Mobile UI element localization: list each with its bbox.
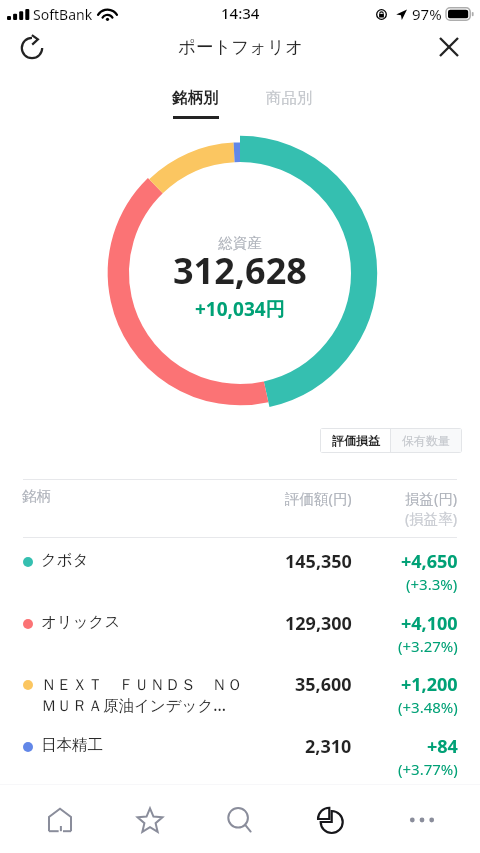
staticText: (+3.27%) — [398, 636, 458, 656]
button[interactable]: Search — [210, 790, 270, 850]
button[interactable]: ＮＥＸＴ ＦＵＮＤＳ ＮＯ — [0, 661, 480, 723]
button[interactable]: クボタ — [0, 538, 480, 600]
staticText: (+3.3%) — [406, 574, 458, 594]
staticText: +4,100 — [401, 611, 458, 636]
button[interactable]: More — [390, 790, 450, 850]
staticText: +1,200 — [401, 672, 458, 697]
staticText: ＭＵＲＡ原油インデック... — [41, 694, 226, 715]
staticText: 2,310 — [305, 734, 352, 759]
button[interactable]: 銘柄別 — [162, 88, 229, 124]
staticText: クボタ — [41, 550, 89, 570]
staticText: ＮＥＸＴ ＦＵＮＤＳ ＮＯ — [41, 673, 243, 694]
staticText: SoftBank — [33, 5, 93, 24]
button[interactable]: オリックス — [0, 600, 480, 662]
staticText: 銘柄 — [22, 487, 51, 505]
button[interactable]: 日本精工 — [0, 723, 480, 785]
staticText: 商品別 — [266, 88, 313, 108]
staticText: 保有数量 — [402, 433, 450, 448]
button[interactable]: Portfolio — [300, 790, 360, 850]
staticText: +4,650 — [401, 549, 458, 574]
staticText: +84 — [427, 734, 458, 759]
staticText: +10,034円 — [195, 296, 285, 322]
staticText: 35,600 — [295, 672, 352, 697]
button[interactable]: 評価損益 — [321, 429, 390, 452]
staticText: 312,628 — [173, 246, 307, 295]
staticText: 145,350 — [285, 549, 352, 574]
staticText: 銘柄別 — [172, 88, 219, 108]
staticText: 14:34 — [221, 3, 260, 23]
button[interactable]: 保有数量 — [391, 429, 461, 452]
staticText: (+3.77%) — [398, 759, 458, 779]
staticText: 評価損益 — [332, 433, 380, 448]
button[interactable]: Refresh — [14, 30, 50, 66]
staticText: 97% — [412, 4, 442, 24]
button[interactable]: Close — [431, 29, 467, 65]
staticText: 評価額(円) — [285, 488, 352, 508]
staticText: 129,300 — [285, 611, 352, 636]
staticText: ポートフォリオ — [178, 36, 303, 58]
staticText: 日本精工 — [41, 735, 103, 755]
button[interactable]: Home — [30, 790, 90, 850]
staticText: 損益(円) — [405, 488, 458, 508]
staticText: オリックス — [41, 612, 121, 632]
staticText: (損益率) — [405, 508, 458, 528]
button[interactable]: Favorites — [120, 790, 180, 850]
staticText: (+3.48%) — [398, 697, 458, 717]
staticText: 総資産 — [218, 234, 262, 252]
button[interactable]: 商品別 — [256, 88, 323, 124]
